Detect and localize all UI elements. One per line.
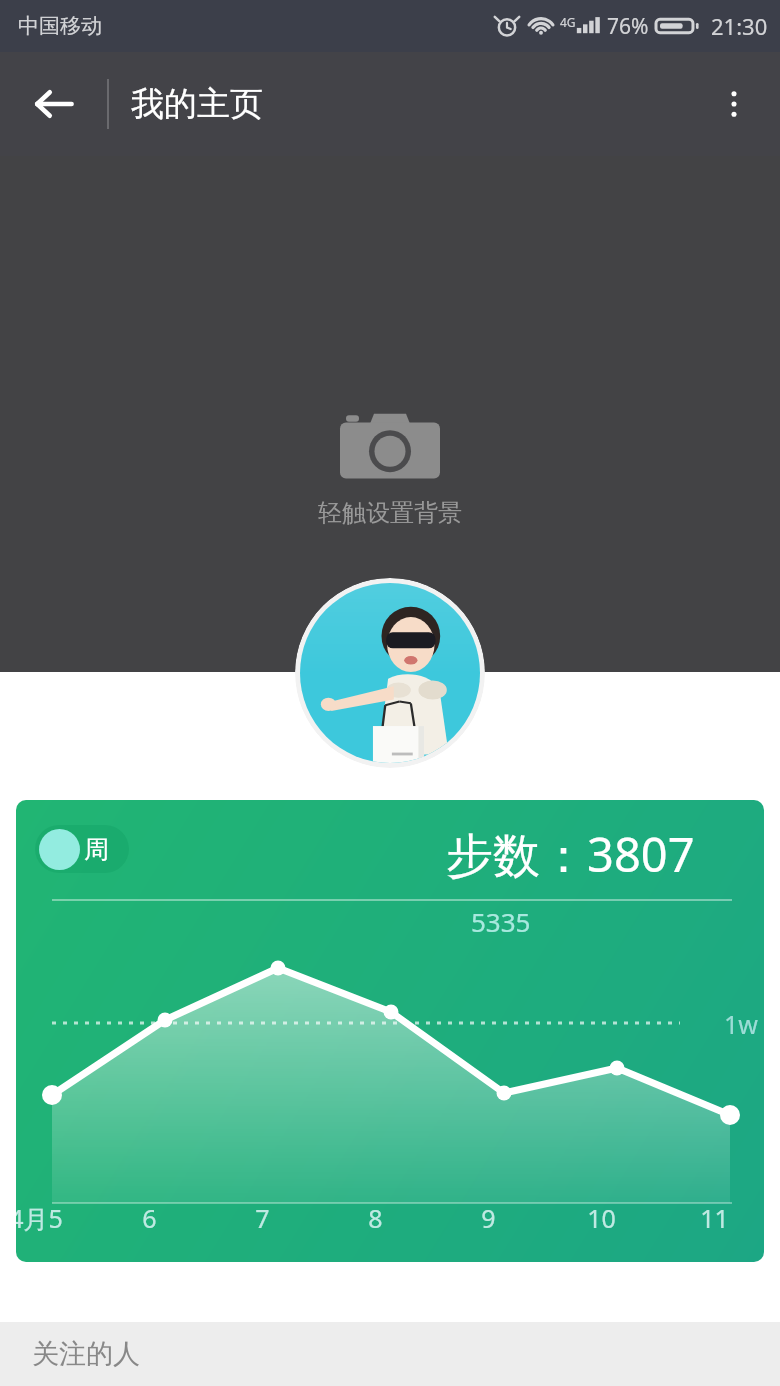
button[interactable]: More options	[696, 66, 772, 142]
staticText: 10	[587, 1201, 616, 1235]
staticText: 8	[368, 1201, 383, 1235]
staticText: 5335	[471, 904, 531, 939]
staticText: 7	[255, 1201, 270, 1235]
button[interactable]: Back	[14, 64, 94, 144]
staticText: 步数：3807	[446, 822, 695, 886]
staticText: 1w	[724, 1007, 758, 1041]
staticText: 76%	[607, 12, 649, 41]
staticText: 4G	[560, 14, 576, 30]
staticText: 9	[481, 1201, 496, 1235]
staticText: 6	[142, 1201, 157, 1235]
staticText: 21:30	[711, 11, 768, 41]
button[interactable]: 周	[35, 825, 129, 873]
staticText: 关注的人	[32, 1337, 140, 1371]
staticText: 轻触设置背景	[318, 498, 462, 528]
staticText: 中国移动	[18, 13, 102, 39]
staticText: 周	[84, 834, 109, 865]
staticText: 4月5	[16, 1201, 63, 1235]
button[interactable]: 周	[16, 800, 764, 1262]
button[interactable]: 轻触设置背景	[0, 156, 780, 672]
button[interactable]: 关注的人	[0, 1322, 780, 1386]
button[interactable]: Profile photo	[295, 578, 485, 768]
staticText: 11	[700, 1201, 729, 1235]
staticText: 我的主页	[131, 83, 263, 125]
